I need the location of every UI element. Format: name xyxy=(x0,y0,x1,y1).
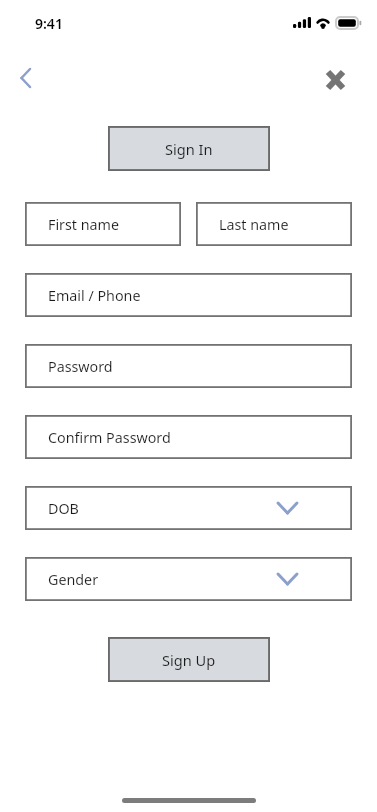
staticText: Last name xyxy=(219,215,289,234)
staticText: DOB xyxy=(48,499,79,518)
button[interactable]: DOB xyxy=(25,486,352,530)
staticText: Email / Phone xyxy=(48,286,141,305)
button[interactable]: Sign In xyxy=(108,126,270,171)
staticText: 9:41 xyxy=(35,14,63,33)
button[interactable]: Close xyxy=(315,60,355,100)
button[interactable]: Back xyxy=(5,58,45,98)
staticText: Confirm Password xyxy=(48,428,171,447)
button[interactable]: Email / Phone xyxy=(25,273,352,317)
staticText: First name xyxy=(48,215,120,234)
button[interactable]: First name xyxy=(25,202,181,246)
staticText: Gender xyxy=(48,570,99,589)
button[interactable]: Confirm Password xyxy=(25,415,352,459)
button[interactable]: Gender xyxy=(25,557,352,601)
button[interactable]: Sign Up xyxy=(108,637,270,682)
button[interactable]: Password xyxy=(25,344,352,388)
staticText: Sign In xyxy=(165,139,213,159)
staticText: Sign Up xyxy=(162,650,216,670)
button[interactable]: Last name xyxy=(196,202,352,246)
staticText: Password xyxy=(48,357,113,376)
